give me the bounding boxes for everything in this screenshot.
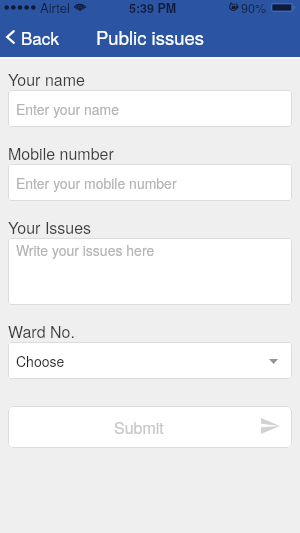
button[interactable]: Enter your mobile number <box>8 164 292 201</box>
staticText: Your Issues <box>8 216 92 239</box>
button[interactable]: Back <box>0 19 69 54</box>
staticText: Write your issues here <box>16 240 155 260</box>
staticText: Enter your mobile number <box>16 173 177 193</box>
staticText: 5:39 PM <box>129 0 177 17</box>
staticText: Public issues <box>96 24 204 50</box>
staticText: Choose <box>16 351 65 371</box>
staticText: Back <box>21 25 59 49</box>
staticText: 90% <box>241 0 267 17</box>
staticText: Submit <box>114 416 164 439</box>
staticText: Ward No. <box>8 320 75 343</box>
other: Send <box>261 418 280 434</box>
button[interactable]: Submit <box>8 406 292 448</box>
button[interactable]: Choose <box>8 342 292 379</box>
staticText: Airtel <box>40 0 70 17</box>
other: Back <box>6 30 15 44</box>
button[interactable]: Enter your name <box>8 90 292 127</box>
staticText: Your name <box>8 68 85 91</box>
button[interactable]: Write your issues here <box>8 238 292 305</box>
staticText: Mobile number <box>8 142 114 165</box>
staticText: Enter your name <box>16 99 119 119</box>
other: Open ward list <box>269 359 278 364</box>
